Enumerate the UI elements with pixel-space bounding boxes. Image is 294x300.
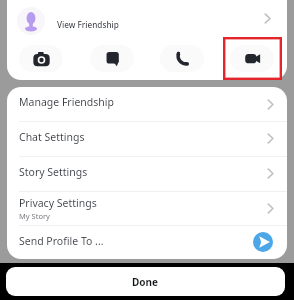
button[interactable]: Manage Friendship xyxy=(7,87,287,121)
button[interactable]: Call xyxy=(160,45,204,72)
staticText: My Story xyxy=(19,211,50,221)
staticText: Privacy Settings xyxy=(19,196,97,210)
staticText: Manage Friendship xyxy=(19,95,114,109)
button[interactable]: Done xyxy=(6,267,285,296)
button[interactable]: View Friendship xyxy=(7,0,287,44)
button[interactable]: Chat Settings xyxy=(7,121,287,156)
button[interactable]: Story Settings xyxy=(7,156,287,191)
staticText: Send Profile To ... xyxy=(19,234,104,248)
staticText: Story Settings xyxy=(19,165,88,179)
staticText: View Friendship xyxy=(57,19,119,30)
button[interactable]: Privacy Settings xyxy=(7,191,287,225)
button[interactable]: Send Profile To ... xyxy=(7,225,287,259)
staticText: Chat Settings xyxy=(19,130,85,144)
button[interactable]: Video call xyxy=(230,45,274,72)
staticText: Done xyxy=(132,275,159,289)
button[interactable]: Chat xyxy=(90,45,134,72)
button[interactable]: Camera xyxy=(19,45,63,72)
